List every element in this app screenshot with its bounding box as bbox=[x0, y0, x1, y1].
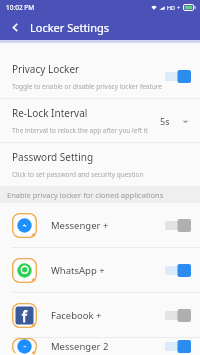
button[interactable]: Password Setting bbox=[0, 143, 200, 186]
staticText: Messenger + bbox=[51, 219, 165, 232]
staticText: Re-Lock Interval bbox=[12, 106, 88, 120]
staticText: Privacy Locker bbox=[12, 62, 80, 76]
button[interactable]: Messenger 2 bbox=[0, 338, 200, 355]
staticText: The interval to relock the app after you… bbox=[12, 126, 148, 135]
staticText: Click to set password and security quest… bbox=[12, 170, 144, 179]
button[interactable]: Toggle on bbox=[165, 70, 191, 83]
button[interactable]: Re-Lock Interval bbox=[0, 99, 200, 142]
staticText: Password Setting bbox=[12, 150, 94, 164]
button[interactable]: Back bbox=[7, 19, 23, 35]
staticText: Toggle to enable or disable privacy lock… bbox=[12, 82, 163, 91]
button[interactable]: WhatsApp + bbox=[0, 248, 200, 292]
button[interactable]: Re-lock interval bbox=[158, 115, 191, 127]
staticText: + bbox=[177, 4, 181, 11]
staticText: HD bbox=[167, 4, 176, 11]
staticText: Enable privacy locker for cloned applica… bbox=[7, 190, 164, 200]
staticText: Messenger 2 bbox=[51, 340, 165, 353]
button[interactable]: Privacy Locker bbox=[0, 55, 200, 98]
staticText: Locker Settings bbox=[30, 20, 110, 35]
button[interactable]: Facebook + bbox=[0, 293, 200, 337]
button[interactable]: Toggle off bbox=[165, 309, 191, 322]
button[interactable]: Toggle on bbox=[165, 264, 191, 277]
staticText: 5s bbox=[160, 115, 170, 127]
button[interactable]: Messenger + bbox=[0, 203, 200, 247]
staticText: Facebook + bbox=[51, 309, 165, 322]
staticText: WhatsApp + bbox=[51, 264, 165, 277]
button[interactable]: Toggle off bbox=[165, 219, 191, 232]
button[interactable]: Toggle on bbox=[165, 340, 191, 353]
staticText: 10:02 PM bbox=[6, 3, 35, 12]
